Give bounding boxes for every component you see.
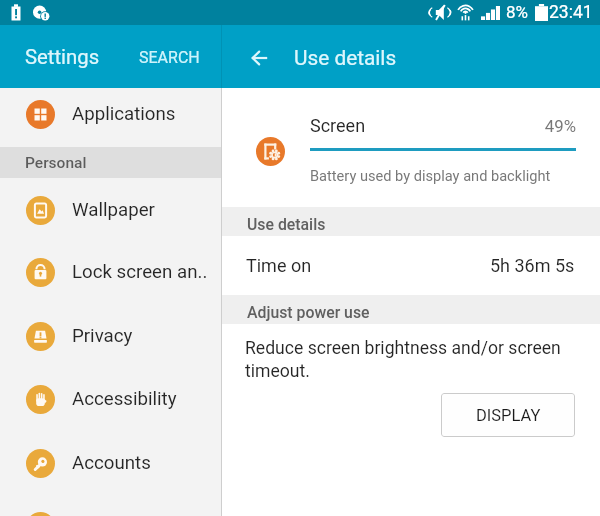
staticText: Time on xyxy=(246,255,312,276)
staticText: Settings xyxy=(25,45,100,69)
staticText: Accessibility xyxy=(72,388,177,410)
staticText: 49% xyxy=(480,116,576,136)
staticText: Lock screen an.. xyxy=(72,261,208,283)
staticText: 8% xyxy=(506,2,529,22)
staticText: Reduce screen brightness and/or screen t… xyxy=(245,338,567,382)
button[interactable]: Accounts xyxy=(0,431,221,495)
staticText: Screen xyxy=(310,115,366,136)
button[interactable]: Privacy xyxy=(0,304,221,368)
staticText: Adjust power use xyxy=(247,303,370,322)
staticText: Battery used by display and backlight xyxy=(310,167,551,184)
staticText: Wallpaper xyxy=(72,199,155,221)
staticText: Personal xyxy=(25,154,87,172)
staticText: SEARCH xyxy=(139,48,200,67)
staticText: Accounts xyxy=(72,452,151,474)
button[interactable]: DISPLAY xyxy=(441,393,575,437)
staticText: Applications xyxy=(72,103,176,125)
staticText: 5h 36m 5s xyxy=(490,255,575,276)
button[interactable]: Accessibility xyxy=(0,367,221,431)
button[interactable]: Lock screen an.. xyxy=(0,240,221,304)
staticText: Use details xyxy=(294,46,397,70)
staticText: DISPLAY xyxy=(476,406,541,425)
staticText: 23:41 xyxy=(549,2,593,23)
button[interactable]: Back xyxy=(241,39,278,76)
button[interactable]: Time on xyxy=(222,236,600,295)
button[interactable]: Wallpaper xyxy=(0,178,221,242)
staticText: Privacy xyxy=(72,325,133,347)
staticText: Use details xyxy=(247,215,326,234)
button[interactable]: Applications xyxy=(0,82,221,146)
button[interactable]: Backup and reset xyxy=(0,494,221,516)
button[interactable]: SEARCH xyxy=(129,38,210,77)
button[interactable]: Settings xyxy=(14,36,111,78)
